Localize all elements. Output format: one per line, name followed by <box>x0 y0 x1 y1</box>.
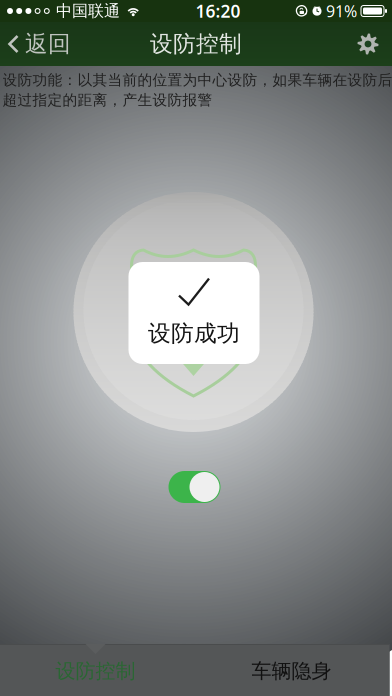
staticText: 91% <box>326 0 357 22</box>
staticText: 超过指定的距离，产生设防报警 <box>2 91 212 109</box>
staticText: 设防控制 <box>55 659 135 683</box>
staticText: 设防成功 <box>148 320 240 347</box>
staticText: 16:20 <box>196 0 241 22</box>
button[interactable]: 车辆隐身 <box>193 648 389 694</box>
button[interactable]: 设防开关 <box>168 471 220 503</box>
staticText: 车辆隐身 <box>251 659 331 683</box>
button[interactable]: 返回 <box>0 22 71 66</box>
staticText: 返回 <box>25 30 71 58</box>
staticText: 中国联通 <box>56 1 120 21</box>
button[interactable]: 设防控制 <box>0 648 193 694</box>
staticText: 设防功能：以其当前的位置为中心设防，如果车辆在设防后移动 <box>2 71 392 89</box>
button[interactable]: 设置 <box>357 25 392 63</box>
staticText: 设防控制 <box>150 30 242 58</box>
